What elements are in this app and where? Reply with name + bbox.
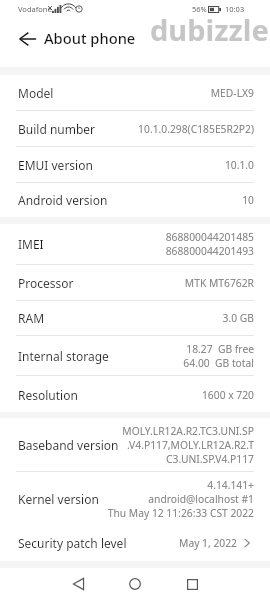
staticText: 868800044201485: [165, 230, 254, 244]
staticText: RAM: [18, 310, 45, 326]
staticText: 10: [242, 193, 254, 207]
staticText: .V4.P117,MOLY.LR12A.R2.T: [126, 438, 254, 452]
button[interactable]: Recents: [176, 568, 208, 600]
button[interactable]: Baseband version: [0, 418, 270, 471]
staticText: MOLY.LR12A.R2.TC3.UNI.SP: [122, 424, 254, 438]
button[interactable]: Home: [119, 568, 151, 600]
button[interactable]: Model: [0, 75, 270, 110]
staticText: 868800044201493: [165, 244, 254, 258]
button[interactable]: Resolution: [0, 376, 270, 412]
staticText: 10.1.0.298(C185E5R2P2): [138, 122, 254, 136]
staticText: 4.14.141+: [207, 478, 254, 492]
button[interactable]: IMEI: [0, 224, 270, 264]
staticText: dubizzle: [150, 10, 269, 49]
staticText: May 1, 2022: [179, 536, 237, 550]
staticText: Kernel version: [18, 491, 99, 507]
staticText: 10.1.0: [224, 158, 254, 172]
staticText: Security patch level: [18, 535, 127, 551]
staticText: IMEI: [18, 236, 44, 252]
staticText: Android version: [18, 192, 108, 208]
button[interactable]: Internal storage: [0, 336, 270, 375]
staticText: Processor: [18, 275, 74, 291]
staticText: Model: [18, 85, 54, 101]
button[interactable]: Android version: [0, 183, 270, 217]
staticText: Baseband version: [18, 437, 119, 453]
button[interactable]: Processor: [0, 265, 270, 300]
button[interactable]: Build number: [0, 111, 270, 146]
staticText: 1600 x 720: [201, 388, 254, 402]
staticText: 3.0 GB: [222, 311, 254, 325]
staticText: Thu May 12 11:26:33 CST 2022: [107, 506, 254, 520]
staticText: Internal storage: [18, 348, 109, 364]
staticText: About phone: [44, 28, 136, 48]
staticText: 18.27 GB free: [186, 342, 254, 356]
staticText: MTK MT6762R: [184, 276, 254, 290]
staticText: MED-LX9: [210, 86, 254, 100]
staticText: EMUI version: [18, 157, 93, 173]
button[interactable]: Back: [13, 24, 43, 54]
staticText: android@localhost #1: [148, 492, 254, 506]
staticText: Vodafone: [18, 4, 52, 14]
button[interactable]: Kernel version: [0, 472, 270, 526]
staticText: 10:03: [225, 4, 245, 14]
button[interactable]: EMUI version: [0, 147, 270, 182]
button[interactable]: RAM: [0, 301, 270, 335]
button[interactable]: Security patch level: [0, 526, 270, 561]
staticText: Build number: [18, 121, 96, 137]
button[interactable]: Back: [62, 568, 94, 600]
staticText: 64.00 GB total: [183, 356, 254, 370]
staticText: C3.UNI.SP.V4.P117: [166, 452, 254, 466]
staticText: Resolution: [18, 387, 78, 403]
staticText: 56%: [192, 4, 207, 14]
